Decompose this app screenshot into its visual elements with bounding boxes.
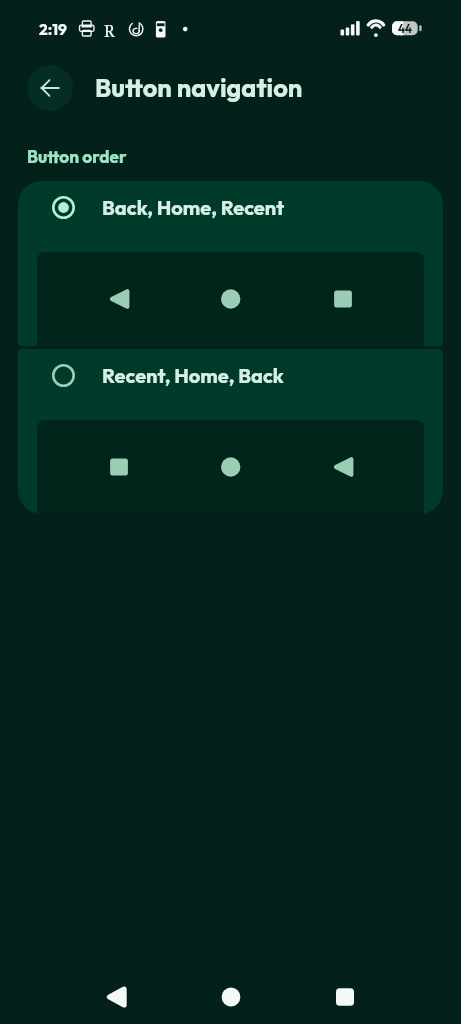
staticText: Back, Home, Recent bbox=[102, 195, 285, 220]
staticText: Recent, Home, Back bbox=[102, 363, 284, 388]
staticText: Button order bbox=[27, 146, 127, 168]
button[interactable]: Back bbox=[27, 65, 73, 111]
button[interactable]: Recent, Home, Back bbox=[18, 349, 443, 514]
staticText: 2:19 bbox=[39, 19, 67, 39]
button[interactable]: Back, Home, Recent bbox=[18, 181, 443, 346]
staticText: Button navigation bbox=[95, 72, 303, 104]
staticText: 44 bbox=[398, 21, 412, 35]
button[interactable]: Recents bbox=[325, 977, 365, 1017]
staticText: R bbox=[104, 20, 115, 42]
button[interactable]: Home bbox=[211, 977, 251, 1017]
button[interactable]: Back bbox=[96, 977, 136, 1017]
